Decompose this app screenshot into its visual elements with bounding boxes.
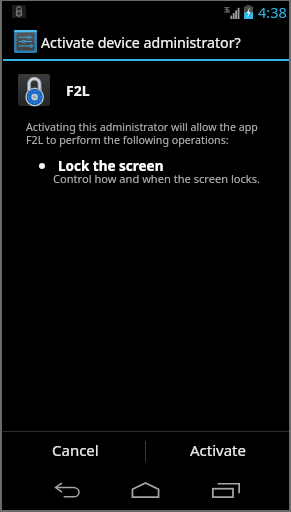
staticText: Lock the screen [58, 157, 164, 175]
staticText: Control how and when the screen locks. [53, 171, 261, 186]
button[interactable]: Cancel [2, 432, 145, 468]
button[interactable]: Back [45, 468, 89, 512]
staticText: Activating this administrator will allow… [26, 120, 265, 147]
staticText: Activate device administrator? [41, 33, 241, 52]
staticText: Activate [190, 440, 246, 460]
button[interactable]: Activate [146, 432, 289, 468]
button[interactable]: Home [123, 468, 167, 512]
staticText: F2L [66, 81, 90, 100]
button[interactable]: Recent apps [204, 468, 248, 512]
staticText: Cancel [52, 440, 99, 460]
staticText: 4:38 [258, 2, 287, 22]
